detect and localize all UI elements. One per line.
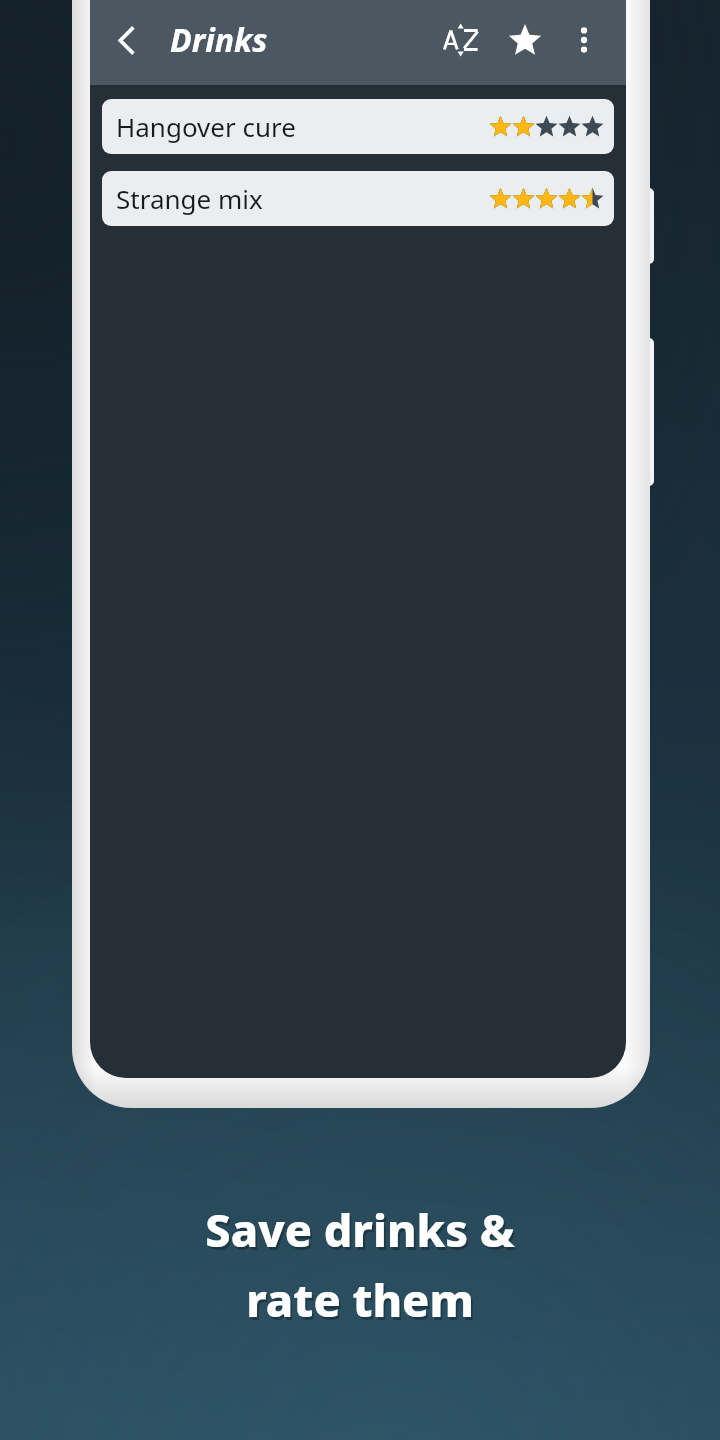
staticText: Save drinks & (205, 1199, 515, 1260)
button[interactable]: More options (556, 12, 612, 68)
staticText: rate them (248, 1272, 476, 1333)
staticText: Hangover cure (116, 109, 296, 144)
staticText: rate them (246, 1269, 474, 1330)
staticText: Save drinks & (207, 1202, 517, 1263)
button[interactable]: Favourites (496, 11, 554, 69)
staticText: Drinks (170, 18, 268, 62)
button[interactable]: Hangover cure (102, 99, 614, 154)
button[interactable]: Navigate up (98, 12, 154, 68)
staticText: Strange mix (116, 181, 263, 216)
button[interactable]: Strange mix (102, 171, 614, 226)
button[interactable]: Sort alphabetically (432, 11, 490, 69)
